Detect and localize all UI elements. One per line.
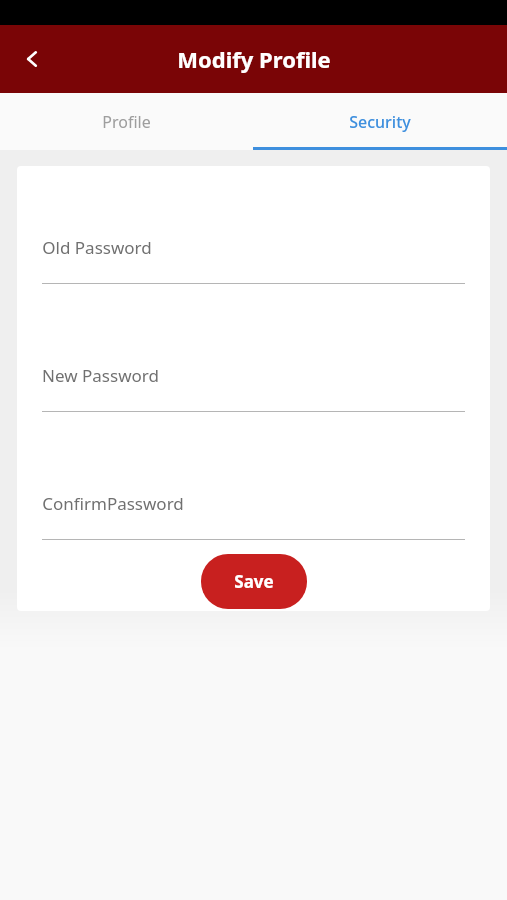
staticText: Save — [234, 570, 274, 593]
button[interactable]: Save — [201, 554, 307, 609]
staticText: ConfirmPassword — [42, 492, 184, 515]
button[interactable]: Back — [8, 35, 56, 83]
staticText: Modify Profile — [177, 44, 331, 74]
staticText: New Password — [42, 364, 159, 387]
button[interactable]: Profile — [0, 93, 253, 150]
staticText: Security — [349, 111, 411, 133]
staticText: Old Password — [42, 236, 152, 259]
staticText: Profile — [102, 111, 151, 133]
button[interactable]: Security — [253, 93, 507, 150]
